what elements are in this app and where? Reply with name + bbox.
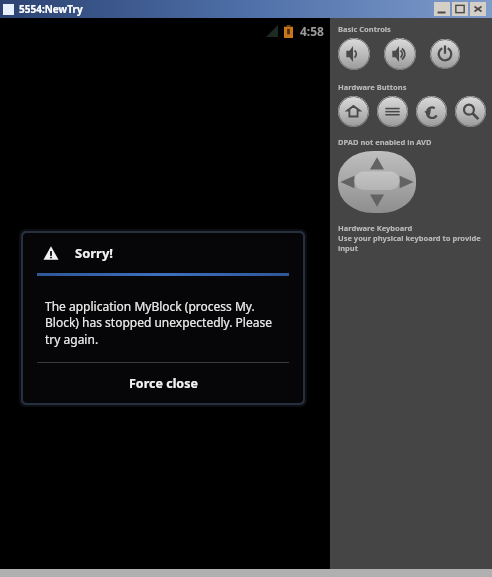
button[interactable]: Home <box>338 96 369 127</box>
staticText: Force close <box>129 375 198 392</box>
button[interactable]: Power <box>430 39 460 69</box>
button[interactable]: Search <box>455 96 486 127</box>
button[interactable]: Menu <box>377 96 408 127</box>
button[interactable]: Back <box>416 96 447 127</box>
staticText: DPAD not enabled in AVD <box>338 137 432 147</box>
staticText: 5554:NewTry <box>19 2 83 16</box>
button[interactable]: Maximize <box>452 2 468 16</box>
button[interactable]: Volume up <box>384 38 416 70</box>
button[interactable]: Volume down <box>338 38 370 70</box>
staticText: 4:58 <box>300 23 324 39</box>
button[interactable]: Close <box>470 2 486 16</box>
staticText: Sorry! <box>75 244 113 262</box>
staticText: Basic Controls <box>338 24 391 34</box>
button[interactable]: D-pad <box>338 151 416 213</box>
staticText: The application MyBlock (process My. Blo… <box>45 298 272 348</box>
button[interactable]: Force close <box>23 363 303 403</box>
staticText: Hardware Buttons <box>338 82 407 92</box>
staticText: Hardware Keyboard <box>338 223 413 233</box>
button[interactable]: Minimize <box>434 2 450 16</box>
staticText: Use your physical keyboard to provide in… <box>338 233 492 253</box>
